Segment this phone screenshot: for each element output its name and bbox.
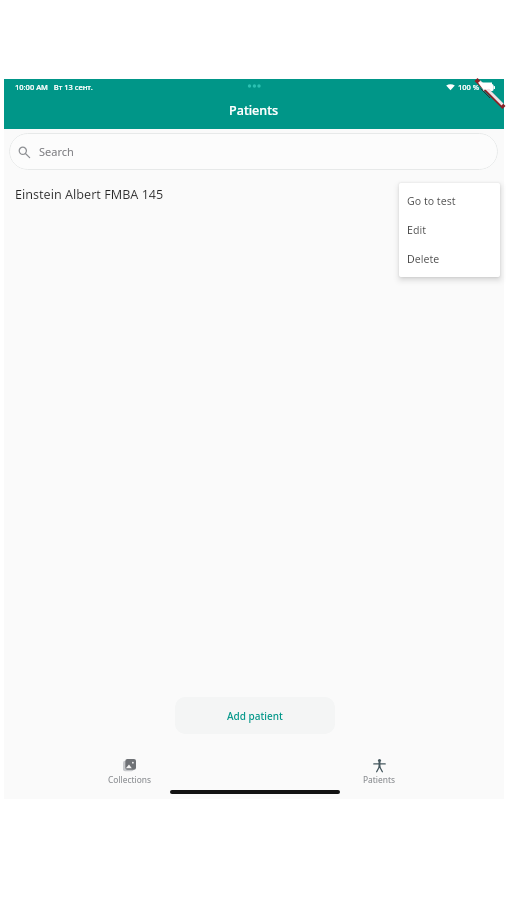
staticText: 100 %	[458, 82, 480, 92]
button[interactable]: Add patient	[175, 697, 335, 734]
button[interactable]: Delete	[399, 244, 500, 273]
staticText: Add patient	[227, 709, 283, 723]
staticText: Edit	[407, 223, 426, 237]
button[interactable]: Search patients	[9, 133, 498, 170]
staticText: Collections	[108, 774, 151, 785]
staticText: Patients	[363, 774, 395, 785]
button[interactable]: Patients	[254, 753, 504, 787]
staticText: 10:00 AM Вт 13 сент.	[15, 82, 93, 92]
staticText: Search	[39, 144, 74, 159]
button[interactable]: Einstein Albert FMBA 145	[4, 181, 504, 207]
button[interactable]: Edit	[399, 215, 500, 244]
staticText: Delete	[407, 252, 440, 266]
button[interactable]: Collections	[4, 753, 254, 787]
button[interactable]: Go to test	[399, 186, 500, 215]
staticText: Go to test	[407, 194, 456, 208]
staticText: Patients	[229, 102, 279, 119]
staticText: Einstein Albert FMBA 145	[15, 186, 164, 203]
